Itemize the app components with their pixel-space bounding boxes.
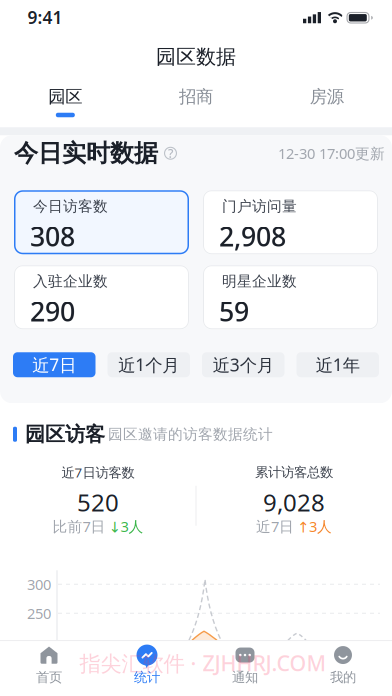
staticText: 指尖汇软件 · ZJHHRJ.COM — [79, 649, 326, 677]
button[interactable]: 近1个月 — [107, 352, 190, 377]
staticText: 290 — [30, 293, 75, 329]
staticText: 比前7日 — [52, 516, 105, 536]
staticText: 入驻企业数 — [33, 272, 108, 290]
staticText: 园区访客 — [25, 422, 105, 447]
staticText: 园区邀请的访客数据统计 — [108, 425, 273, 443]
staticText: 520 — [77, 486, 119, 518]
button[interactable]: 园区 — [0, 86, 131, 117]
staticText: 园区数据 — [156, 44, 236, 69]
staticText: 近7日访客数 — [61, 463, 134, 481]
staticText: 12-30 17:00更新 — [278, 143, 385, 163]
staticText: 今日实时数据 — [14, 138, 158, 168]
staticText: 9:41 — [27, 6, 62, 29]
button[interactable]: 统计 — [98, 641, 196, 685]
staticText: 门户访问量 — [222, 197, 297, 215]
button[interactable]: 房源 — [261, 86, 392, 117]
staticText: 今日访客数 — [33, 197, 108, 215]
button[interactable]: 今日访客数 — [14, 190, 189, 254]
staticText: ? — [168, 145, 173, 161]
staticText: 近3个月 — [213, 353, 274, 376]
staticText: 近1年 — [316, 353, 360, 376]
staticText: ↑3人 — [297, 516, 332, 536]
staticText: 我的 — [330, 669, 356, 685]
button[interactable]: 近1年 — [296, 352, 379, 377]
button[interactable]: 首页 — [0, 641, 98, 685]
staticText: 300 — [27, 574, 51, 594]
button[interactable]: 近7日 — [13, 352, 95, 377]
staticText: ↓3人 — [108, 516, 143, 536]
staticText: 统计 — [134, 669, 160, 685]
button[interactable]: 说明 — [164, 147, 177, 160]
button[interactable]: 招商 — [131, 86, 261, 117]
staticText: 308 — [30, 218, 75, 254]
staticText: 近7日 — [32, 353, 76, 376]
staticText: 首页 — [36, 669, 62, 685]
staticText: 近1个月 — [118, 353, 179, 376]
staticText: 累计访客总数 — [255, 464, 333, 480]
button[interactable]: 门户访问量 — [203, 190, 378, 254]
staticText: 250 — [27, 603, 51, 623]
staticText: 明星企业数 — [222, 272, 297, 290]
button[interactable]: 明星企业数 — [203, 265, 378, 329]
staticText: 59 — [219, 293, 249, 329]
staticText: 房源 — [310, 86, 344, 107]
button[interactable]: 我的 — [294, 641, 392, 685]
staticText: 9,028 — [263, 486, 325, 518]
staticText: 园区 — [48, 86, 82, 107]
button[interactable]: 入驻企业数 — [14, 265, 189, 329]
button[interactable]: 通知 — [196, 641, 294, 685]
button[interactable]: 近3个月 — [202, 352, 284, 377]
staticText: 招商 — [179, 86, 213, 107]
staticText: 通知 — [232, 669, 258, 685]
staticText: 2,908 — [219, 218, 286, 254]
staticText: 近7日 — [256, 516, 294, 536]
